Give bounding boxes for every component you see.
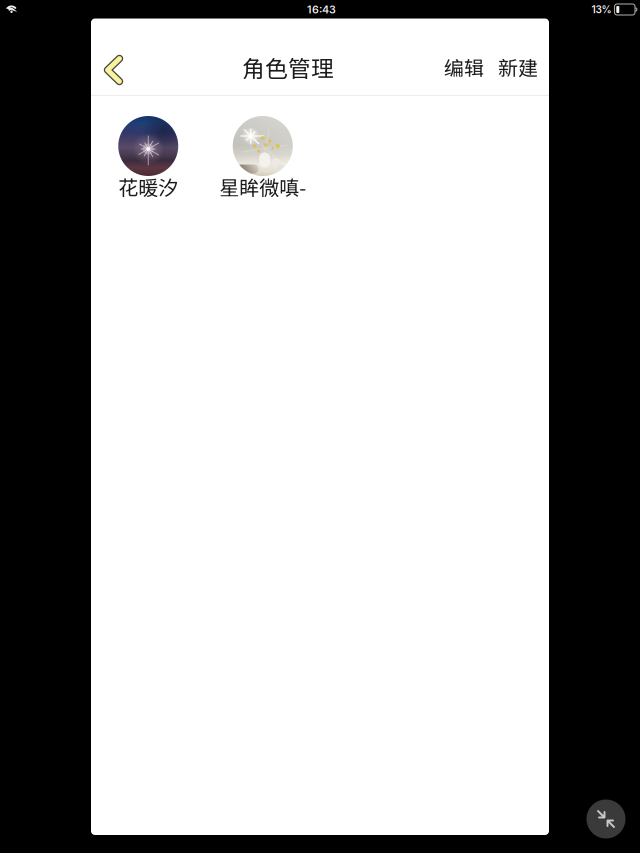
staticText: 星眸微嗔-	[219, 172, 306, 201]
staticText: 16:43	[307, 3, 336, 16]
staticText: 新建	[498, 52, 538, 81]
staticText: 花暖汐	[118, 172, 178, 201]
button[interactable]: Back	[95, 48, 131, 92]
staticText: 角色管理	[242, 51, 334, 83]
button[interactable]: 花暖汐	[91, 116, 205, 197]
button[interactable]: Collapse	[586, 799, 625, 838]
staticText: 13%	[591, 3, 611, 16]
button[interactable]: 星眸微嗔-	[205, 116, 320, 197]
button[interactable]: 编辑	[437, 45, 491, 89]
staticText: 编辑	[444, 52, 484, 81]
button[interactable]: 新建	[491, 45, 545, 89]
